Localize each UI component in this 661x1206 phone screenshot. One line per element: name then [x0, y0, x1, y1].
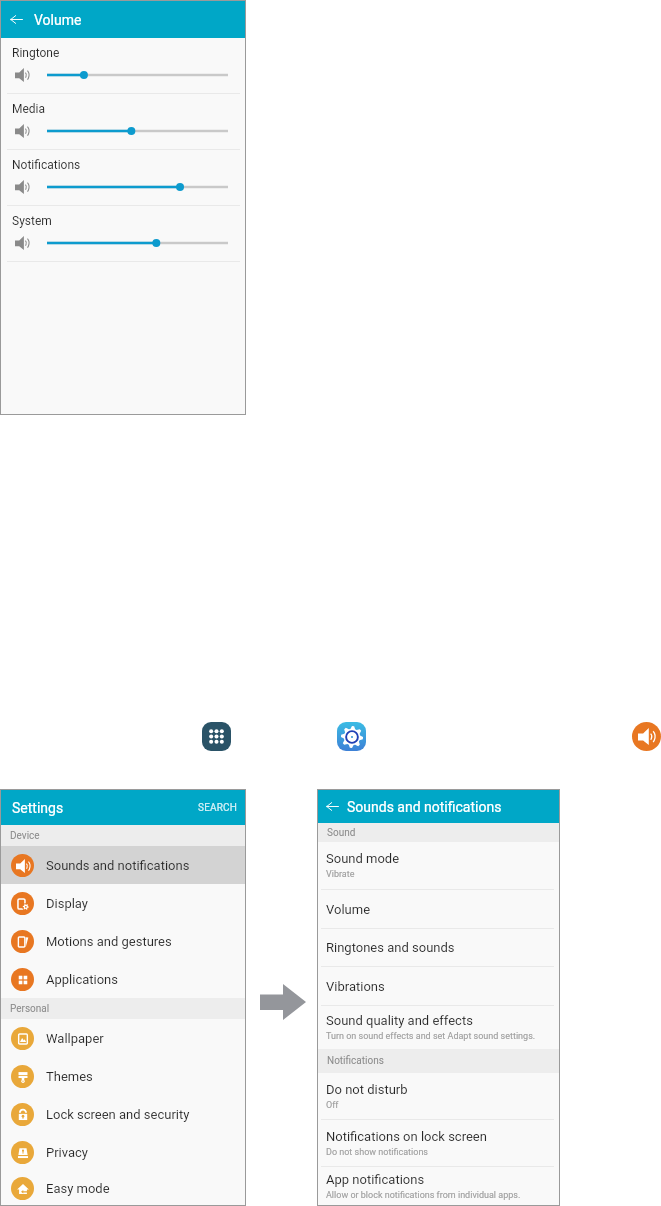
button[interactable]: SEARCH	[198, 802, 238, 814]
staticText: Settings	[12, 800, 64, 816]
staticText: Volume	[34, 12, 82, 28]
button[interactable]: Ringtone	[1, 38, 245, 93]
button[interactable]: Back	[1, 1, 31, 38]
button[interactable]: Volume	[632, 722, 661, 751]
button[interactable]: Settings	[337, 722, 366, 751]
staticText: Do not show notifications	[326, 1147, 428, 1158]
button[interactable]: Vibrations	[318, 967, 559, 1005]
button[interactable]: Back	[318, 790, 346, 823]
button[interactable]: Apps	[202, 722, 231, 751]
staticText: Off	[326, 1100, 339, 1111]
staticText: Wallpaper	[46, 1031, 104, 1046]
staticText: Sounds and notifications	[347, 799, 502, 815]
staticText: Sounds and notifications	[46, 858, 190, 873]
staticText: Vibrate	[326, 869, 355, 880]
button[interactable]: Ringtones and sounds	[318, 929, 559, 966]
staticText: Ringtone	[12, 46, 60, 60]
button[interactable]: Themes	[1, 1057, 245, 1095]
staticText: System	[12, 214, 52, 228]
button[interactable]: Lock screen and security	[1, 1095, 245, 1133]
staticText: Themes	[46, 1069, 93, 1084]
staticText: Display	[46, 896, 88, 911]
button[interactable]: Easy mode	[1, 1171, 245, 1205]
staticText: Media	[12, 102, 46, 116]
staticText: Device	[10, 830, 40, 842]
button[interactable]: Sound mode	[318, 842, 559, 889]
button[interactable]: Notifications	[1, 150, 245, 205]
staticText: Sound mode	[326, 851, 400, 866]
staticText: Sound quality and effects	[326, 1013, 473, 1028]
staticText: Applications	[46, 972, 118, 987]
button[interactable]: System	[1, 206, 245, 261]
button[interactable]: Do not disturb	[318, 1073, 559, 1119]
staticText: App notifications	[326, 1172, 425, 1187]
button[interactable]: Sounds and notifications	[1, 846, 245, 884]
staticText: Ringtones and sounds	[326, 940, 455, 955]
staticText: Privacy	[46, 1145, 88, 1160]
button[interactable]: Privacy	[1, 1133, 245, 1171]
staticText: Volume	[326, 902, 371, 917]
button[interactable]: Media	[1, 94, 245, 149]
staticText: Notifications on lock screen	[326, 1129, 487, 1144]
staticText: SEARCH	[198, 802, 238, 814]
staticText: Allow or block notifications from indivi…	[326, 1190, 521, 1201]
button[interactable]: Notifications on lock screen	[318, 1120, 559, 1166]
button[interactable]: App notifications	[318, 1167, 559, 1205]
button[interactable]: Sound quality and effects	[318, 1006, 559, 1049]
staticText: Motions and gestures	[46, 934, 172, 949]
staticText: Notifications	[12, 158, 81, 172]
staticText: Easy mode	[46, 1181, 110, 1196]
button[interactable]: Motions and gestures	[1, 922, 245, 960]
staticText: Do not disturb	[326, 1082, 408, 1097]
staticText: Notifications	[327, 1055, 384, 1067]
button[interactable]: Wallpaper	[1, 1019, 245, 1057]
staticText: Lock screen and security	[46, 1107, 190, 1122]
button[interactable]: Display	[1, 884, 245, 922]
staticText: Turn on sound effects and set Adapt soun…	[326, 1031, 536, 1042]
button[interactable]: Volume	[318, 890, 559, 928]
staticText: Personal	[10, 1003, 50, 1015]
staticText: Vibrations	[326, 979, 385, 994]
staticText: Sound	[327, 827, 356, 839]
button[interactable]: Applications	[1, 960, 245, 998]
